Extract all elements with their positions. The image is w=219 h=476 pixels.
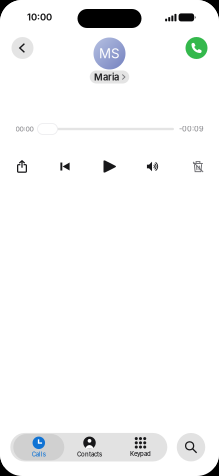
button[interactable]: MS: [90, 37, 129, 83]
staticText: 00:00: [15, 125, 33, 133]
button[interactable]: Contacts: [64, 433, 115, 461]
button[interactable]: Speaker: [137, 154, 167, 178]
staticText: Calls: [32, 451, 46, 458]
staticText: Maria: [94, 71, 119, 83]
button[interactable]: Calls: [13, 433, 64, 461]
button[interactable]: Search: [177, 433, 205, 461]
button[interactable]: Play: [95, 154, 125, 178]
button[interactable]: Call: [185, 37, 207, 59]
staticText: MS: [99, 45, 120, 61]
button[interactable]: Keypad: [115, 433, 166, 461]
staticText: Keypad: [130, 450, 151, 457]
button[interactable]: Rewind: [50, 154, 80, 178]
button[interactable]: Delete: [183, 154, 213, 178]
button[interactable]: Share: [7, 154, 37, 178]
button[interactable]: Back: [11, 37, 33, 59]
staticText: Contacts: [77, 451, 102, 458]
staticText: -00:09: [179, 125, 204, 133]
staticText: 10:00: [27, 11, 52, 23]
